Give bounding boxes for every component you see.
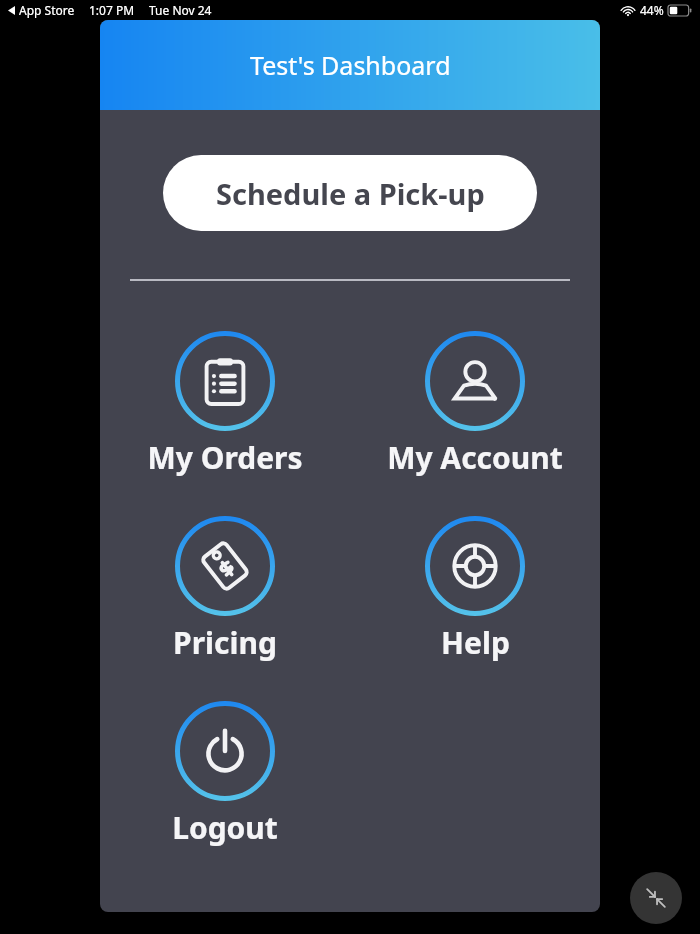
button[interactable]: Help (350, 516, 600, 663)
staticText: App Store (19, 2, 75, 18)
staticText: 1:07 PM (89, 2, 135, 18)
staticText: Tue Nov 24 (149, 2, 212, 18)
staticText: Help (441, 622, 510, 663)
button[interactable]: My Account (350, 331, 600, 478)
button[interactable]: Logout (100, 701, 350, 848)
button[interactable]: Collapse (630, 872, 682, 924)
staticText: Logout (172, 807, 278, 848)
button[interactable]: Schedule a Pick-up (163, 155, 537, 231)
staticText: My Account (387, 437, 563, 478)
staticText: Test's Dashboard (250, 48, 451, 82)
button[interactable]: My Orders (100, 331, 350, 478)
button[interactable]: Pricing (100, 516, 350, 663)
staticText: 44% (640, 2, 664, 18)
staticText: Pricing (173, 622, 277, 663)
staticText: Schedule a Pick-up (216, 174, 485, 213)
staticText: My Orders (147, 437, 303, 478)
